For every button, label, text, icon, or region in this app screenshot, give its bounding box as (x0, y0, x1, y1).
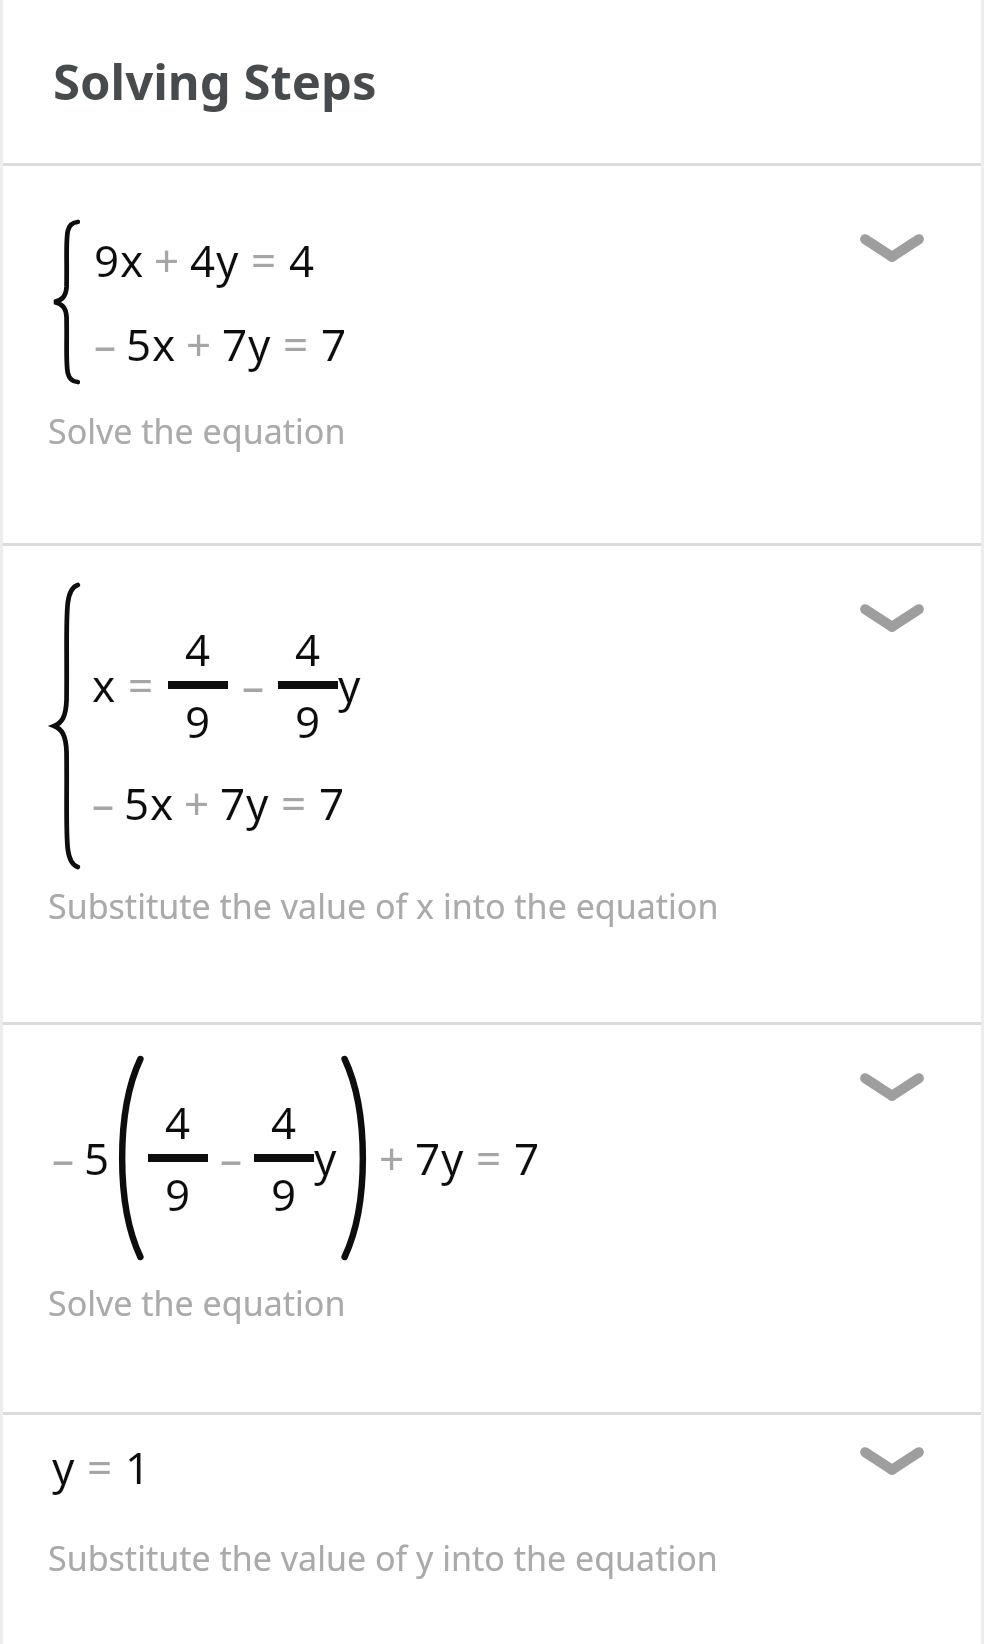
staticText: 4 (165, 1092, 191, 1152)
staticText: x (150, 773, 174, 833)
button[interactable]: Expand step (860, 598, 924, 638)
staticText: 4 (190, 230, 216, 290)
staticText: 9 (94, 230, 120, 290)
button[interactable]: – (0, 1025, 984, 1412)
staticText: 7 (321, 314, 347, 374)
staticText: – (92, 773, 114, 833)
staticText: – (94, 314, 116, 374)
staticText: – (52, 1128, 74, 1188)
staticText: = (281, 773, 307, 833)
staticText: + (154, 230, 180, 290)
button[interactable]: Expand step (860, 1067, 924, 1107)
staticText: 5 (84, 1128, 110, 1188)
staticText: 4 (271, 1092, 297, 1152)
staticText: 9 (185, 691, 211, 751)
button[interactable]: 9 (0, 166, 984, 543)
staticText: 7 (319, 773, 345, 833)
staticText: 5 (124, 773, 150, 833)
staticText: 9 (165, 1164, 191, 1224)
staticText: + (379, 1128, 405, 1188)
staticText: 5 (126, 314, 152, 374)
staticText: y (52, 1437, 75, 1497)
staticText: 9 (295, 691, 321, 751)
staticText: y (248, 314, 271, 374)
staticText: + (186, 314, 212, 374)
staticText: y (216, 230, 239, 290)
staticText: – (220, 1128, 242, 1188)
button[interactable]: x (0, 546, 984, 1022)
staticText: = (128, 655, 154, 715)
staticText: Solve the equation (48, 1280, 346, 1326)
staticText: = (87, 1437, 113, 1497)
staticText: y (314, 1128, 337, 1188)
staticText: x (92, 655, 116, 715)
staticText: y (246, 773, 269, 833)
staticText: 4 (295, 619, 321, 679)
staticText: 4 (289, 230, 315, 290)
staticText: x (152, 314, 176, 374)
staticText: – (242, 655, 264, 715)
staticText: Substitute the value of y into the equat… (48, 1535, 718, 1581)
staticText: = (283, 314, 309, 374)
button[interactable]: Expand step (860, 228, 924, 268)
staticText: y (441, 1128, 464, 1188)
button[interactable]: Expand step (860, 1441, 924, 1481)
staticText: 7 (220, 773, 246, 833)
staticText: = (476, 1128, 502, 1188)
staticText: 4 (185, 619, 211, 679)
staticText: Substitute the value of x into the equat… (48, 883, 719, 929)
staticText: = (251, 230, 277, 290)
staticText: x (120, 230, 144, 290)
staticText: Solve the equation (48, 408, 346, 454)
staticText: + (184, 773, 210, 833)
button[interactable]: y (0, 1415, 984, 1644)
staticText: 7 (415, 1128, 441, 1188)
staticText: y (338, 655, 361, 715)
staticText: 7 (222, 314, 248, 374)
staticText: Solving Steps (53, 48, 377, 115)
staticText: 1 (125, 1437, 151, 1497)
staticText: 7 (514, 1128, 540, 1188)
staticText: 9 (271, 1164, 297, 1224)
